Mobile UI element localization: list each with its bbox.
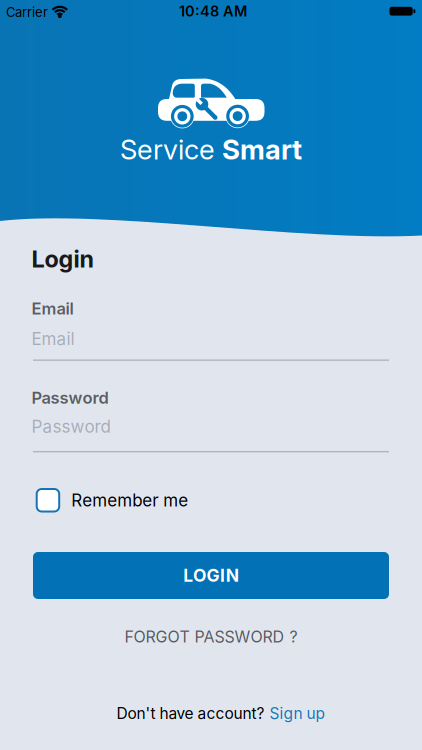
staticText: Service: [120, 133, 215, 166]
button[interactable]: Password: [31, 416, 389, 452]
staticText: Email: [31, 299, 73, 319]
staticText: Sign up: [269, 704, 324, 723]
button[interactable]: FORGOT PASSWORD ?: [124, 627, 297, 646]
staticText: Don't have account?: [116, 704, 264, 723]
button[interactable]: LOGIN: [33, 552, 389, 599]
button[interactable]: Email: [31, 328, 389, 361]
button[interactable]: Sign up: [269, 704, 324, 723]
staticText: Smart: [222, 133, 302, 166]
staticText: Password: [31, 388, 108, 408]
staticText: Password: [31, 416, 110, 437]
staticText: Email: [31, 328, 74, 349]
staticText: 10:48 AM: [179, 2, 247, 20]
staticText: Login: [31, 245, 93, 273]
staticText: LOGIN: [183, 565, 239, 586]
button[interactable]: Remember me: [37, 489, 188, 511]
staticText: Remember me: [71, 490, 188, 511]
staticText: Carrier: [6, 4, 48, 20]
staticText: FORGOT PASSWORD ?: [124, 627, 297, 646]
